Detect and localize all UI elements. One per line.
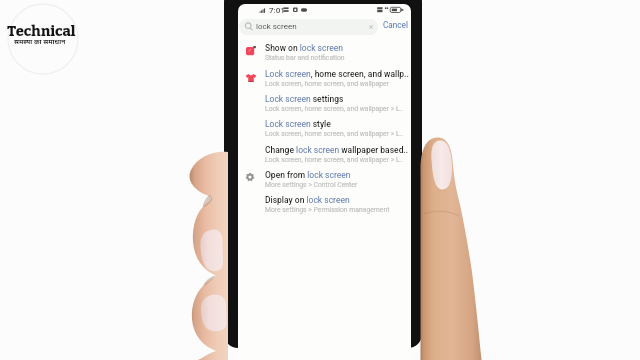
staticText: Cancel [383,20,408,30]
staticText: Lock screen style [265,119,331,129]
button[interactable]: Lock screen settings [238,91,411,116]
staticText: Status bar and notification [265,54,345,62]
staticText: lock screen [256,22,297,31]
staticText: Technical [7,22,76,40]
staticText: Lock screen, home screen, and wallp.. [265,69,409,79]
staticText: 7:01 [269,5,285,14]
staticText: More settings > Control Center [265,181,358,189]
staticText: More settings > Permission management [265,206,390,214]
button[interactable]: Display on lock screen [238,192,411,217]
staticText: Lock screen, home screen, and wallpaper … [265,130,404,138]
staticText: Change lock screen wallpaper based.. [265,145,409,155]
button[interactable]: Change lock screen wallpaper based.. [238,142,411,167]
button[interactable]: Lock screen style [238,116,411,141]
button[interactable]: Lock screen, home screen, and wallp.. [238,66,411,91]
staticText: Show on lock screen [265,43,343,53]
staticText: Display on lock screen [265,195,350,205]
button[interactable]: Clear search [367,23,375,31]
button[interactable]: Open from lock screen [238,167,411,192]
staticText: Lock screen, home screen, and wallpaper … [265,105,404,113]
button[interactable]: Cancel [381,17,410,33]
staticText: Lock screen, home screen, and wallpaper … [265,156,404,164]
staticText: Lock screen settings [265,94,344,104]
staticText: समस्या का समाधान [14,38,66,47]
button[interactable]: Show on lock screen [238,40,411,65]
staticText: Lock screen, home screen, and wallpaper [265,80,389,88]
staticText: Open from lock screen [265,170,351,180]
button[interactable]: lock screen [239,19,378,35]
